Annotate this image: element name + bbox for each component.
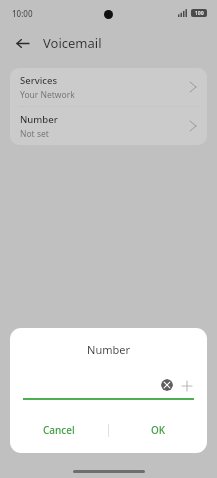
staticText: Services (20, 74, 58, 87)
staticText: 100 (195, 10, 204, 17)
staticText: Number (10, 342, 207, 357)
staticText: 10:00 (12, 8, 33, 19)
button[interactable]: OK (109, 417, 207, 443)
staticText: Number (20, 113, 58, 126)
button[interactable]: Back (11, 32, 33, 54)
button[interactable]: Services (10, 68, 207, 106)
button[interactable]: Number (10, 107, 207, 145)
button[interactable]: Cancel (10, 417, 108, 443)
staticText: OK (151, 423, 166, 437)
button[interactable]: Add plus (180, 379, 193, 392)
button[interactable]: Clear text (161, 379, 173, 391)
staticText: Not set (20, 128, 49, 140)
staticText: Your Network (20, 89, 75, 101)
staticText: Cancel (43, 423, 75, 437)
staticText: Voicemail (43, 34, 102, 52)
